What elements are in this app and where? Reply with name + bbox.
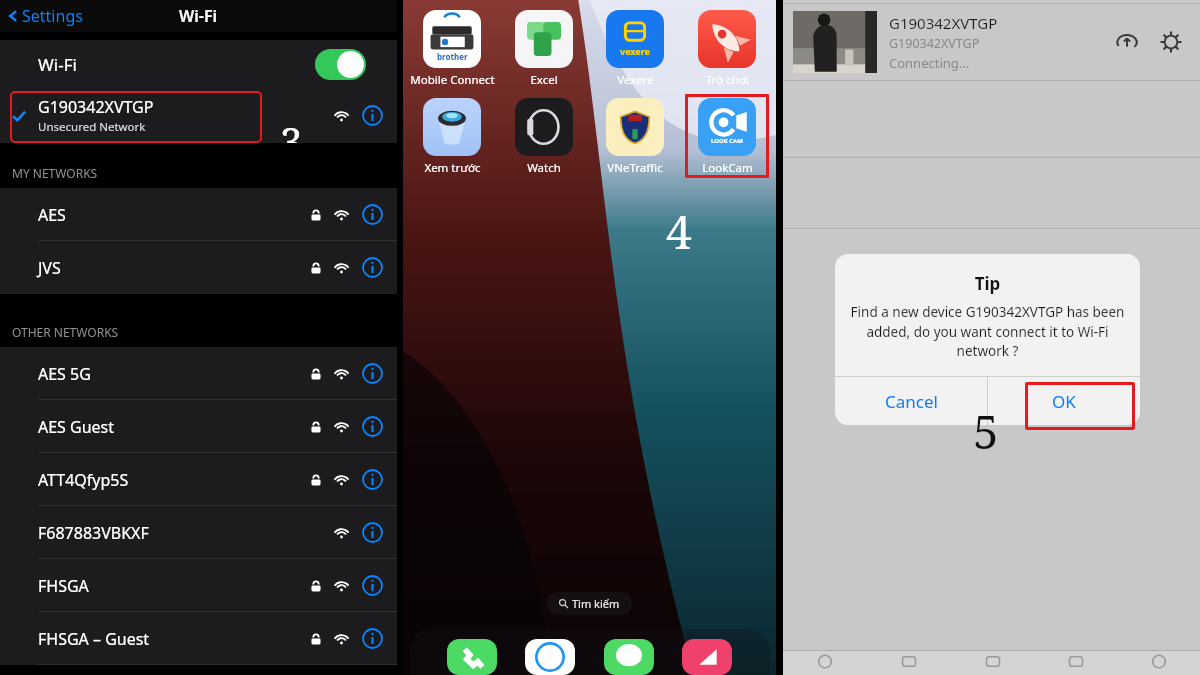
button[interactable]: AES xyxy=(0,188,397,241)
button[interactable]: ATT4Qfyp5S xyxy=(0,453,397,506)
button[interactable]: Network info xyxy=(362,257,383,278)
staticText: Connecting... xyxy=(889,54,970,72)
staticText: Trò chơi xyxy=(706,72,749,88)
button[interactable]: Tab 2 xyxy=(867,651,951,675)
button[interactable]: LOOK CAM xyxy=(684,98,770,176)
button[interactable]: FHSGA – Guest xyxy=(0,612,397,665)
button[interactable]: JVS xyxy=(0,241,397,294)
staticText: ATT4Qfyp5S xyxy=(38,469,129,491)
staticText: 5 xyxy=(973,400,999,463)
button[interactable] xyxy=(682,639,732,675)
staticText: F687883VBKXF xyxy=(38,522,149,544)
button[interactable]: Wi-Fi xyxy=(0,40,397,88)
staticText: Watch xyxy=(527,160,561,176)
button[interactable]: Wi-Fi toggle on xyxy=(315,49,366,80)
staticText: FHSGA – Guest xyxy=(38,628,150,650)
staticText: Cancel xyxy=(885,390,938,413)
staticText: Tìm kiếm xyxy=(572,596,620,611)
button[interactable]: Back to Settings xyxy=(6,5,83,27)
staticText: AES Guest xyxy=(38,416,115,438)
button[interactable]: Tab 1 xyxy=(783,651,867,675)
button[interactable]: Network info xyxy=(362,628,383,649)
button[interactable]: Network info xyxy=(362,105,383,126)
staticText: LOOK CAM xyxy=(711,137,743,145)
button[interactable]: Network info xyxy=(362,522,383,543)
button[interactable]: Network info xyxy=(362,204,383,225)
button[interactable]: Trò chơi xyxy=(684,10,770,88)
button[interactable]: Watch xyxy=(501,98,587,176)
button[interactable]: Settings xyxy=(1154,25,1188,59)
button[interactable]: Tab 5 xyxy=(1117,651,1200,675)
button[interactable]: Cancel xyxy=(835,377,987,425)
staticText: Tip xyxy=(835,272,1140,295)
staticText: G190342XVTGP xyxy=(38,96,154,118)
button[interactable]: Excel xyxy=(501,10,587,88)
staticText: Settings xyxy=(22,5,83,27)
button[interactable] xyxy=(525,639,575,675)
staticText: LookCam xyxy=(702,160,753,176)
staticText: Wi-Fi xyxy=(179,5,218,27)
staticText: brother xyxy=(437,51,468,62)
button[interactable]: Xem trước xyxy=(409,98,495,176)
button[interactable] xyxy=(447,639,497,675)
staticText: 3 xyxy=(280,114,303,143)
staticText: Vexere xyxy=(617,72,654,88)
staticText: MY NETWORKS xyxy=(12,165,98,181)
staticText: Find a new device G190342XVTGP has been … xyxy=(849,303,1126,360)
staticText: FHSGA xyxy=(38,575,89,597)
button[interactable]: VNeTraffic xyxy=(592,98,678,176)
staticText: JVS xyxy=(38,257,61,279)
button[interactable]: Upload to cloud xyxy=(1110,25,1144,59)
staticText: OK xyxy=(1052,390,1076,413)
button[interactable]: vexere xyxy=(592,10,678,88)
staticText: G190342XVTGP xyxy=(889,35,980,52)
staticText: Wi-Fi xyxy=(38,53,77,76)
button[interactable]: Network info xyxy=(362,363,383,384)
button[interactable]: Network info xyxy=(362,416,383,437)
staticText: Excel xyxy=(530,72,558,88)
button[interactable]: G190342XVTGP xyxy=(783,4,1200,80)
staticText: Unsecured Network xyxy=(38,119,146,135)
button[interactable]: Tab 3 xyxy=(951,651,1034,675)
staticText: Mobile Connect xyxy=(410,72,495,88)
button[interactable] xyxy=(604,639,654,675)
button[interactable]: AES Guest xyxy=(0,400,397,453)
button[interactable]: Network info xyxy=(362,575,383,596)
staticText: VNeTraffic xyxy=(607,160,663,176)
staticText: 4 xyxy=(666,200,692,263)
staticText: vexere xyxy=(620,45,650,57)
button[interactable]: Tab 4 xyxy=(1034,651,1117,675)
button[interactable]: F687883VBKXF xyxy=(0,506,397,559)
staticText: Xem trước xyxy=(424,160,481,176)
button[interactable]: G190342XVTGP xyxy=(0,88,397,143)
staticText: AES xyxy=(38,204,66,226)
button[interactable]: brother xyxy=(409,10,495,88)
button[interactable]: FHSGA xyxy=(0,559,397,612)
staticText: AES 5G xyxy=(38,363,91,385)
staticText: OTHER NETWORKS xyxy=(12,324,119,340)
button[interactable]: AES 5G xyxy=(0,347,397,400)
button[interactable]: Tìm kiếm xyxy=(559,596,620,611)
button[interactable]: Network info xyxy=(362,469,383,490)
button[interactable]: OK xyxy=(988,377,1140,425)
staticText: G190342XVTGP xyxy=(889,13,998,33)
